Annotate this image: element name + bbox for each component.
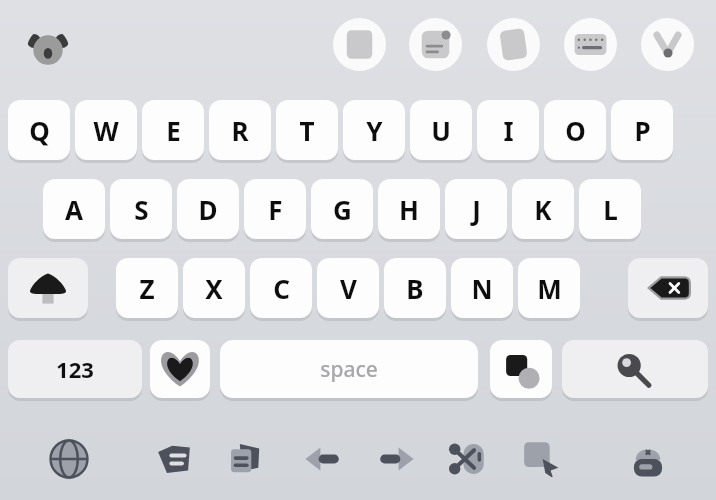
staticText: O [565,113,586,148]
staticText: K [534,192,552,227]
button[interactable]: 123 [8,340,142,398]
staticText: D [198,192,218,227]
button[interactable]: Q [8,100,70,160]
button[interactable]: Move cursor right [374,437,418,481]
button[interactable]: G [311,179,373,239]
button[interactable]: K [512,179,574,239]
button[interactable]: P [611,100,673,160]
button[interactable]: M [518,258,580,318]
staticText: L [603,192,618,227]
staticText: space [320,355,378,384]
button[interactable]: I [477,100,539,160]
button[interactable]: Shift [8,258,88,318]
button[interactable]: Voice input [641,18,694,71]
button[interactable]: Translate [487,18,540,71]
staticText: G [333,192,352,227]
button[interactable]: Traditional Chinese [333,18,386,71]
button[interactable]: Profile [626,437,670,481]
staticText: 123 [56,354,94,384]
button[interactable]: L [579,179,641,239]
staticText: X [205,271,223,306]
staticText: F [268,192,283,227]
button[interactable]: Emoji [150,340,210,398]
button[interactable]: R [209,100,271,160]
button[interactable]: Select text [518,437,562,481]
button[interactable]: A [43,179,105,239]
button[interactable]: Clipboard [409,18,462,71]
staticText: Y [366,113,383,148]
button[interactable]: Keyboard layout [564,18,617,71]
staticText: J [472,192,481,227]
button[interactable]: X [183,258,245,318]
button[interactable]: J [445,179,507,239]
button[interactable]: U [410,100,472,160]
button[interactable]: Move cursor left [301,437,345,481]
button[interactable]: Y [343,100,405,160]
button[interactable]: Translate input [490,340,552,398]
button[interactable]: Cut [445,437,489,481]
button[interactable]: T [276,100,338,160]
staticText: U [431,113,451,148]
staticText: P [634,113,651,148]
button[interactable]: D [177,179,239,239]
button[interactable]: V [317,258,379,318]
button[interactable]: B [384,258,446,318]
staticText: V [340,271,357,306]
button[interactable]: H [378,179,440,239]
staticText: H [399,192,419,227]
staticText: N [471,271,493,306]
staticText: W [93,113,119,148]
button[interactable]: W [75,100,137,160]
button[interactable]: S [110,179,172,239]
staticText: S [134,192,149,227]
button[interactable]: E [142,100,204,160]
button[interactable]: Backspace [628,258,708,318]
button[interactable]: Search [562,340,708,398]
staticText: Z [139,271,155,306]
button[interactable]: space [220,340,478,398]
staticText: T [299,113,315,148]
button[interactable]: Messages [152,437,196,481]
button[interactable]: N [451,258,513,318]
staticText: B [406,271,424,306]
button[interactable]: Notes [224,437,268,481]
staticText: I [503,113,514,148]
staticText: R [231,113,249,148]
button[interactable]: O [544,100,606,160]
staticText: M [537,271,562,306]
staticText: Q [29,113,50,148]
staticText: A [65,192,83,227]
button[interactable]: C [250,258,312,318]
button[interactable]: Globe [47,437,91,481]
staticText: E [166,113,181,148]
button[interactable]: F [244,179,306,239]
button[interactable]: Z [116,258,178,318]
button[interactable]: Keyboard logo [27,28,69,70]
staticText: C [273,271,290,306]
